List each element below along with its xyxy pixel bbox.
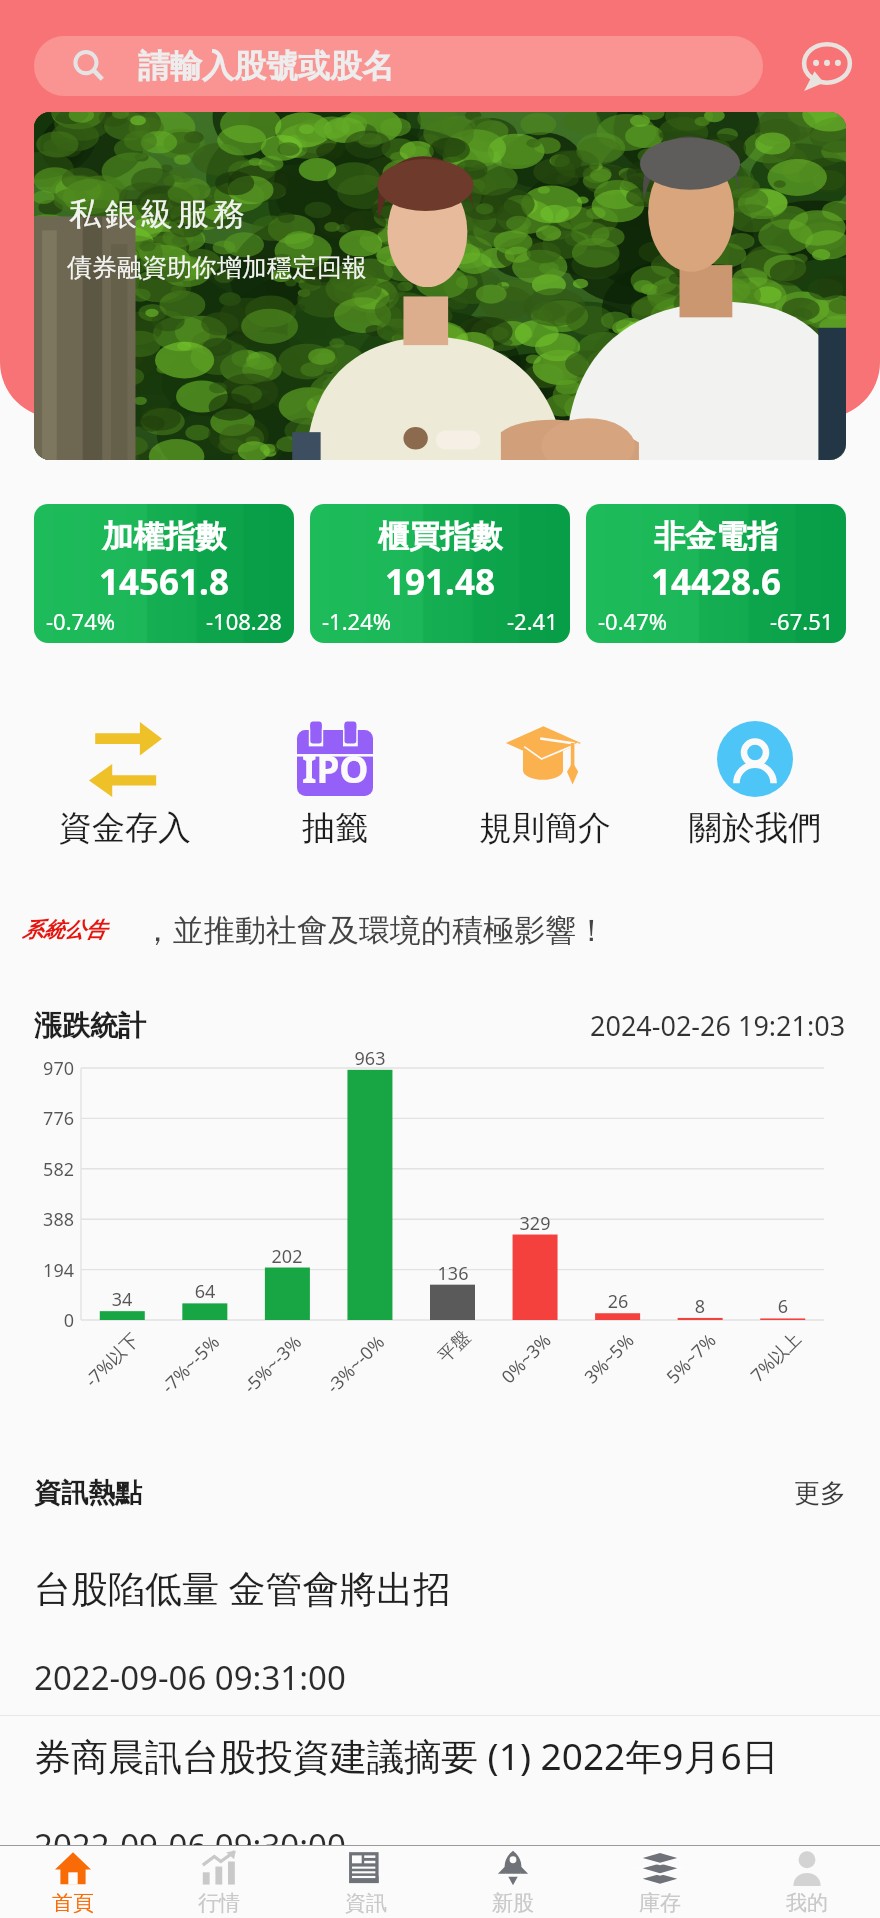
staticText: 2022-09-06 09:31:00 [34, 1655, 346, 1700]
staticText: 系統公告 [22, 917, 106, 943]
staticText: IPO [302, 743, 369, 793]
staticText: 3%~5% [579, 1328, 639, 1389]
staticText: -7%以下 [79, 1327, 145, 1392]
staticText: 6 [733, 1294, 833, 1319]
button[interactable]: 規則簡介 [440, 717, 650, 849]
staticText: 資訊 [345, 1890, 387, 1916]
staticText: 34 [72, 1287, 172, 1312]
staticText: 關於我們 [689, 807, 821, 849]
staticText: 7%以上 [745, 1326, 807, 1387]
staticText: 漲跌統計 [34, 1008, 146, 1043]
button[interactable]: 關於我們 [650, 717, 860, 849]
staticText: -108.28 [206, 606, 282, 631]
staticText: -1.24% [322, 606, 392, 631]
staticText: 資金存入 [59, 807, 191, 849]
button[interactable]: Messages [795, 34, 859, 98]
staticText: 台股陷低量 金管會將出招 [34, 1562, 451, 1613]
staticText: 14428.6 [598, 558, 834, 606]
button[interactable]: 私銀級服務 [34, 112, 846, 460]
staticText: 非金電指 [598, 517, 834, 556]
button[interactable]: 首頁 [0, 1846, 146, 1918]
button[interactable]: 新股 [439, 1846, 586, 1918]
button[interactable]: 櫃買指數 [310, 504, 570, 643]
button[interactable]: 加權指數 [34, 504, 294, 643]
staticText: 平盤 [433, 1326, 475, 1368]
staticText: 私銀級服務 [67, 194, 247, 234]
staticText: 136 [403, 1261, 503, 1286]
button[interactable]: 系統公告 [22, 899, 880, 961]
button[interactable]: 行情 [146, 1846, 292, 1918]
staticText: 0 [6, 1308, 74, 1333]
staticText: 0%~3% [496, 1328, 556, 1389]
staticText: 5%~7% [661, 1328, 721, 1389]
button[interactable]: 請輸入股號或股名 [34, 36, 763, 96]
staticText: 194 [6, 1258, 74, 1283]
staticText: -3%~-0% [321, 1329, 390, 1399]
staticText: -0.74% [46, 606, 116, 631]
staticText: 行情 [198, 1890, 240, 1916]
staticText: 8 [650, 1294, 750, 1319]
staticText: 963 [320, 1046, 420, 1071]
staticText: -2.41 [507, 606, 558, 631]
staticText: 加權指數 [46, 517, 282, 556]
button[interactable]: IPO [230, 717, 440, 849]
staticText: 更多 [794, 1477, 846, 1510]
staticText: 2022-09-06 09:30:00 [34, 1823, 346, 1868]
button[interactable]: 我的 [733, 1846, 880, 1918]
staticText: 26 [568, 1289, 668, 1314]
staticText: 請輸入股號或股名 [138, 46, 394, 86]
staticText: 券商晨訊台股投資建議摘要 (1) 2022年9月6日 [34, 1730, 779, 1781]
staticText: 388 [6, 1207, 74, 1232]
staticText: 庫存 [639, 1890, 681, 1916]
staticText: 202 [237, 1244, 337, 1269]
button[interactable]: 資訊 [292, 1846, 439, 1918]
staticText: 櫃買指數 [322, 517, 558, 556]
staticText: 2024-02-26 19:21:03 [590, 1007, 846, 1044]
button[interactable]: 券商晨訊台股投資建議摘要 (1) 2022年9月6日 [0, 1730, 880, 1898]
button[interactable]: 台股陷低量 金管會將出招 [0, 1562, 880, 1730]
staticText: 14561.8 [46, 558, 282, 606]
staticText: 970 [6, 1056, 74, 1081]
staticText: -0.47% [598, 606, 668, 631]
staticText: 我的 [786, 1890, 828, 1916]
staticText: 抽籤 [302, 807, 368, 849]
staticText: 582 [6, 1157, 74, 1182]
button[interactable]: 資金存入 [20, 717, 230, 849]
staticText: 776 [6, 1106, 74, 1131]
staticText: 新股 [492, 1890, 534, 1916]
button[interactable]: 非金電指 [586, 504, 846, 643]
button[interactable]: 更多 [794, 1477, 846, 1510]
staticText: -67.51 [770, 606, 834, 631]
staticText: 191.48 [322, 558, 558, 606]
staticText: ，並推動社會及環境的積極影響！ [142, 911, 607, 950]
staticText: 64 [155, 1279, 255, 1304]
staticText: 債券融資助你增加穩定回報 [67, 252, 367, 283]
staticText: -7%~-5% [156, 1329, 225, 1399]
staticText: 329 [485, 1211, 585, 1236]
staticText: 規則簡介 [479, 807, 611, 849]
staticText: 資訊熱點 [34, 1476, 142, 1510]
button[interactable]: 庫存 [586, 1846, 733, 1918]
staticText: 首頁 [52, 1890, 94, 1916]
staticText: -5%~-3% [238, 1329, 307, 1399]
